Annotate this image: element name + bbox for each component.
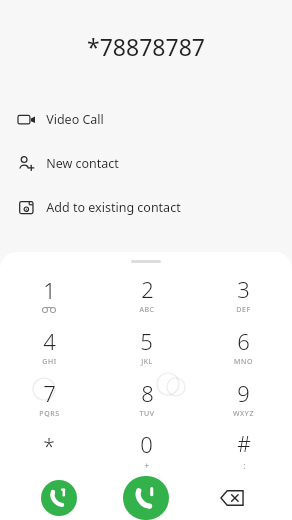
staticText: 6 xyxy=(237,326,250,356)
staticText: * xyxy=(43,432,55,461)
staticText: 0 xyxy=(140,429,153,459)
button[interactable]: Add to existing contact xyxy=(0,194,292,220)
staticText: 4 xyxy=(43,326,56,356)
button[interactable]: 0 xyxy=(98,424,195,476)
staticText: 1 xyxy=(43,275,56,305)
staticText: TUV xyxy=(139,409,155,419)
staticText: 2 xyxy=(141,274,154,304)
staticText: + xyxy=(144,460,150,471)
button[interactable]: 4 xyxy=(0,320,98,372)
staticText: ABC xyxy=(139,305,155,315)
button[interactable]: Call with SIM 1 xyxy=(123,476,169,520)
staticText: WXYZ xyxy=(233,409,254,419)
button[interactable]: Backspace xyxy=(214,480,250,516)
staticText: 8 xyxy=(141,378,154,408)
button[interactable]: # xyxy=(195,424,292,476)
staticText: DEF xyxy=(236,305,251,315)
button[interactable]: 7 xyxy=(0,372,98,424)
staticText: : xyxy=(243,460,246,471)
button[interactable]: 3 xyxy=(195,268,292,320)
button[interactable]: 5 xyxy=(98,320,195,372)
button[interactable]: Video Call xyxy=(0,106,292,132)
staticText: Video Call xyxy=(46,111,104,128)
staticText: # xyxy=(237,430,251,459)
staticText: 9 xyxy=(237,378,250,408)
staticText: 3 xyxy=(237,274,250,304)
button[interactable]: * xyxy=(0,424,98,476)
button[interactable]: 1 xyxy=(0,268,98,320)
staticText: 5 xyxy=(140,326,153,356)
staticText: New contact xyxy=(46,155,119,172)
button[interactable]: 8 xyxy=(98,372,195,424)
staticText: 7 xyxy=(43,378,56,408)
staticText: PQRS xyxy=(39,409,60,419)
button[interactable]: New contact xyxy=(0,150,292,176)
button[interactable]: Call with SIM 2 xyxy=(41,480,77,516)
staticText: *78878787 xyxy=(87,31,205,62)
button[interactable]: 9 xyxy=(195,372,292,424)
staticText: GHI xyxy=(42,357,57,367)
staticText: MNO xyxy=(234,357,253,367)
staticText: JKL xyxy=(141,357,153,367)
button[interactable]: 2 xyxy=(98,268,195,320)
staticText: Add to existing contact xyxy=(46,199,181,216)
button[interactable]: 6 xyxy=(195,320,292,372)
